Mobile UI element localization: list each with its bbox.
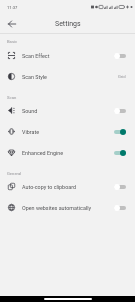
staticText: Enhanced Engine — [22, 150, 64, 156]
button[interactable]: Toggle off — [113, 203, 126, 213]
button[interactable]: Vibrate — [0, 121, 135, 142]
button[interactable]: Back — [4, 16, 20, 32]
staticText: Grid — [118, 74, 126, 79]
staticText: Basic — [7, 39, 18, 44]
staticText: Vibrate — [22, 129, 40, 135]
button[interactable]: Sound — [0, 100, 135, 121]
staticText: Scan Style — [22, 74, 47, 80]
button[interactable]: Scan Effect — [0, 45, 135, 66]
staticText: 11:37 — [7, 5, 18, 10]
button[interactable]: Scan Style — [0, 66, 135, 87]
staticText: Sound — [22, 108, 38, 114]
staticText: Scan Effect — [22, 53, 50, 59]
button[interactable]: Toggle on — [113, 148, 126, 158]
button[interactable]: Toggle on — [113, 127, 126, 137]
button[interactable]: Enhanced Engine — [0, 142, 135, 163]
button[interactable]: Auto-copy to clipboard — [0, 176, 135, 197]
staticText: Open websites automatically — [22, 205, 92, 211]
staticText: Scan — [7, 95, 17, 100]
staticText: Settings — [55, 20, 81, 28]
staticText: General — [7, 171, 22, 176]
button[interactable]: Open websites automatically — [0, 197, 135, 218]
staticText: Auto-copy to clipboard — [22, 184, 76, 190]
button[interactable]: Toggle off — [113, 51, 126, 61]
button[interactable]: Toggle off — [113, 106, 126, 116]
button[interactable]: Toggle off — [113, 182, 126, 192]
